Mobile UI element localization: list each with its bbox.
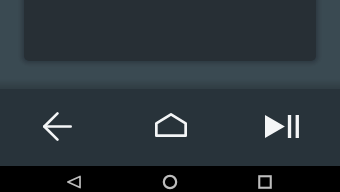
button[interactable]: Recent apps bbox=[245, 172, 285, 192]
button[interactable]: Back bbox=[0, 89, 114, 163]
button[interactable]: Play or pause bbox=[227, 89, 340, 163]
button[interactable]: Home bbox=[114, 89, 227, 163]
button[interactable]: System home bbox=[150, 172, 190, 192]
button[interactable]: System back bbox=[54, 172, 94, 192]
